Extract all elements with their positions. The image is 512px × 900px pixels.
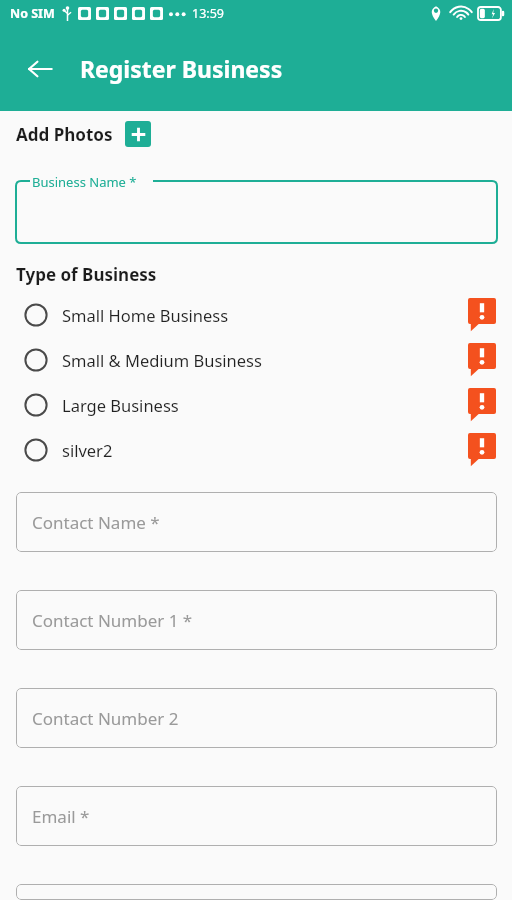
button[interactable]: Back (14, 43, 66, 95)
button[interactable]: Warning (468, 433, 496, 467)
staticText: Contact Number 1 * (32, 609, 193, 632)
button[interactable]: Contact Name * (16, 492, 497, 552)
button[interactable]: Email * (16, 786, 497, 846)
button[interactable]: Contact Number 1 * (16, 590, 497, 650)
button[interactable]: Small & Medium Business (0, 337, 512, 382)
staticText: Register Business (80, 53, 283, 84)
button[interactable]: Warning (468, 298, 496, 332)
button[interactable]: Add photo (125, 121, 151, 147)
staticText: No SIM (10, 5, 55, 22)
staticText: Small Home Business (62, 304, 229, 326)
button[interactable] (16, 884, 497, 900)
button[interactable]: silver2 (0, 427, 512, 472)
staticText: Type of Business (16, 263, 157, 286)
staticText: Business Name * (32, 173, 137, 191)
staticText: Small & Medium Business (62, 349, 262, 371)
staticText: Add Photos (16, 123, 113, 146)
staticText: Email * (32, 805, 90, 828)
button[interactable]: Contact Number 2 (16, 688, 497, 748)
staticText: Contact Number 2 (32, 707, 179, 730)
button[interactable]: Warning (468, 343, 496, 377)
staticText: Contact Name * (32, 511, 160, 534)
staticText: Large Business (62, 394, 179, 416)
button[interactable] (16, 181, 497, 243)
staticText: 13:59 (192, 5, 224, 22)
button[interactable]: Large Business (0, 382, 512, 427)
staticText: silver2 (62, 439, 113, 461)
button[interactable]: Small Home Business (0, 292, 512, 337)
button[interactable]: Warning (468, 388, 496, 422)
